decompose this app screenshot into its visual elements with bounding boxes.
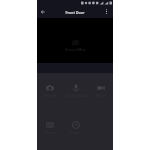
button[interactable]: Record bbox=[88, 84, 113, 98]
staticText: Device is Offline bbox=[65, 48, 86, 52]
button[interactable]: Back bbox=[37, 6, 49, 18]
button[interactable]: Two-Way Audio bbox=[63, 84, 88, 98]
button[interactable]: Presets bbox=[63, 121, 88, 135]
button[interactable]: More options bbox=[100, 5, 112, 17]
button[interactable]: Timeline bbox=[37, 121, 63, 135]
button[interactable]: Snapshot bbox=[37, 84, 63, 98]
staticText: Front Door bbox=[65, 10, 85, 15]
